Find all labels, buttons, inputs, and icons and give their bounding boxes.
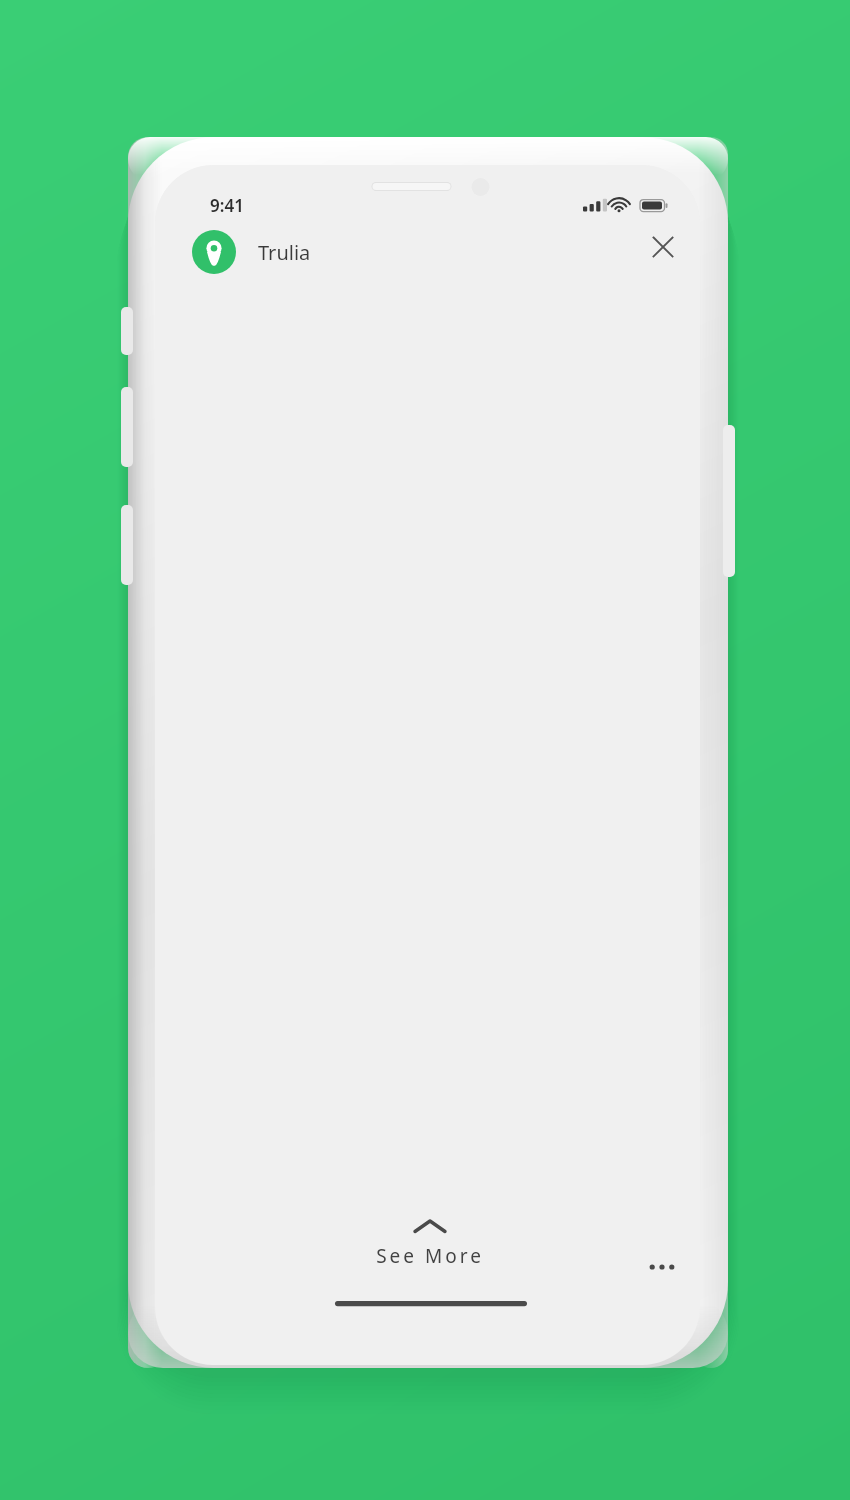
button[interactable]: See More xyxy=(352,1218,508,1280)
button[interactable]: Close xyxy=(641,225,685,269)
staticText: See More xyxy=(376,1243,484,1269)
button[interactable]: Trulia xyxy=(192,230,311,274)
staticText: 9:41 xyxy=(210,194,244,217)
staticText: Trulia xyxy=(258,239,311,266)
button[interactable]: More options xyxy=(640,1245,684,1289)
